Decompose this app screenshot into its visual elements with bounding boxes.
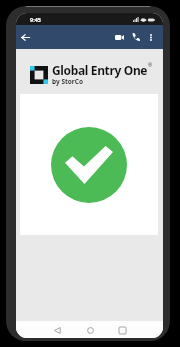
button[interactable]: Call [129,30,143,44]
staticText: ® [148,62,153,69]
staticText: 9:45 [30,16,41,23]
button[interactable]: Recents [116,324,128,336]
button[interactable]: Home [84,324,96,336]
button[interactable]: Back [18,30,32,44]
button[interactable]: More options [145,31,157,43]
button[interactable]: Video call [112,30,126,44]
staticText: by StorCo [52,77,83,86]
staticText: Global Entry One [52,62,148,78]
button[interactable]: Back [51,324,63,336]
